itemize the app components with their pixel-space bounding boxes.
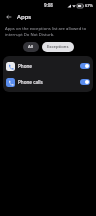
button[interactable]: Exceptions [42, 42, 74, 52]
staticText: Phone [18, 63, 33, 69]
staticText: Exceptions [47, 44, 69, 50]
button[interactable]: Toggle [80, 79, 90, 85]
staticText: Apps on the exceptions list are allowed … [5, 26, 89, 38]
staticText: Phone calls [18, 79, 43, 85]
button[interactable]: Toggle [80, 63, 90, 69]
staticText: All [28, 44, 34, 50]
staticText: 67% [85, 3, 93, 8]
staticText: Apps [17, 13, 32, 21]
button[interactable]: All [23, 42, 39, 52]
staticText: 9:08 [44, 2, 53, 8]
button[interactable]: Phone [3, 58, 93, 74]
button[interactable]: Phone calls [3, 74, 93, 90]
button[interactable]: Back [3, 11, 15, 23]
